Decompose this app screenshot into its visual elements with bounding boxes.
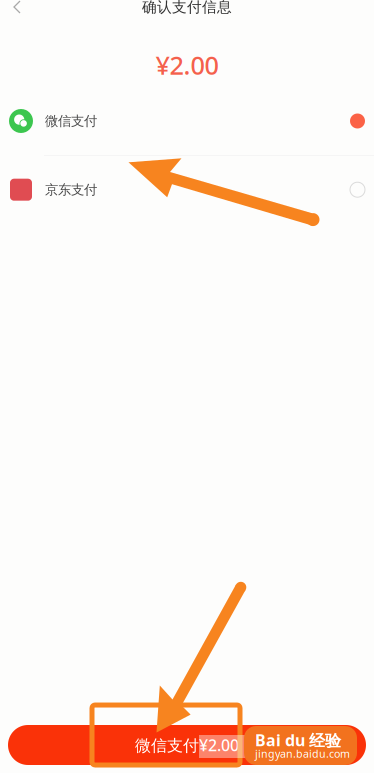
staticText: 京东支付 <box>45 181 97 198</box>
button[interactable]: Back <box>8 0 26 16</box>
button[interactable]: 微信支付 <box>0 87 374 155</box>
button[interactable]: 微信支付¥2.00 <box>8 725 366 765</box>
staticText: jingyan.baidu.com <box>255 746 350 761</box>
button[interactable]: 京东支付 <box>0 156 374 224</box>
staticText: 微信支付 <box>45 113 97 129</box>
staticText: ¥2.00 <box>155 48 218 82</box>
staticText: 确认支付信息 <box>142 0 232 16</box>
staticText: 微信支付¥2.00 <box>135 734 239 756</box>
staticText: Bai du 经验 <box>255 729 341 751</box>
